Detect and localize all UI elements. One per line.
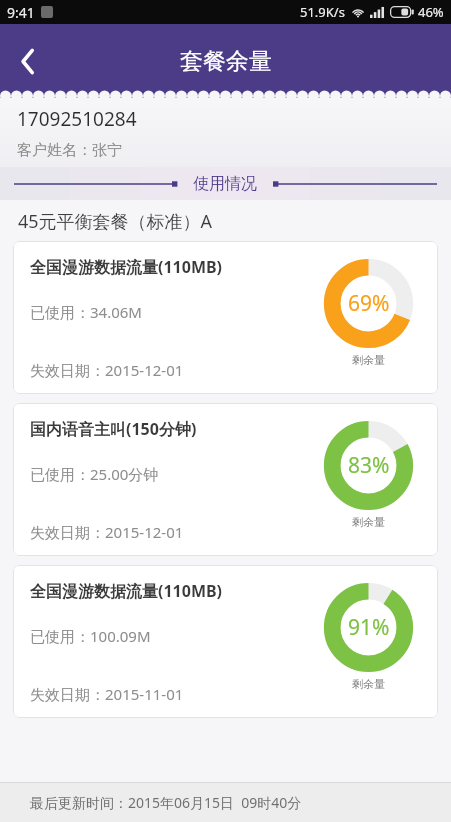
button[interactable]: 国内语音主叫(150分钟) [13,403,438,556]
staticText: 17092510284 [17,106,137,132]
staticText: 失效日期：2015-12-01 [30,522,184,542]
staticText: 69% [348,289,390,318]
staticText: 剩余量 [352,515,385,529]
staticText: 最后更新时间：2015年06月15日 09时40分 [30,793,302,812]
staticText: 使用情况 [193,174,257,194]
staticText: 已使用：100.09M [30,626,151,646]
staticText: 已使用：25.00分钟 [30,464,159,484]
staticText: 45元平衡套餐（标准）A [18,209,213,234]
staticText: 9:41 [7,3,35,22]
staticText: 全国漫游数据流量(110MB) [30,580,223,602]
staticText: 套餐余量 [180,47,272,76]
staticText: 全国漫游数据流量(110MB) [30,256,223,278]
staticText: 83% [348,451,390,480]
staticText: 失效日期：2015-11-01 [30,684,184,704]
button[interactable]: 全国漫游数据流量(110MB) [13,241,438,394]
staticText: 已使用：34.06M [30,302,142,322]
staticText: 失效日期：2015-12-01 [30,360,184,380]
staticText: 51.9K/s [300,3,345,21]
button[interactable]: Back [0,32,54,90]
staticText: 剩余量 [352,353,385,367]
staticText: 客户姓名：张宁 [17,141,122,160]
staticText: 国内语音主叫(150分钟) [30,418,197,440]
staticText: 剩余量 [352,677,385,691]
staticText: 46% [418,3,444,21]
staticText: 91% [348,613,390,642]
button[interactable]: 全国漫游数据流量(110MB) [13,565,438,718]
